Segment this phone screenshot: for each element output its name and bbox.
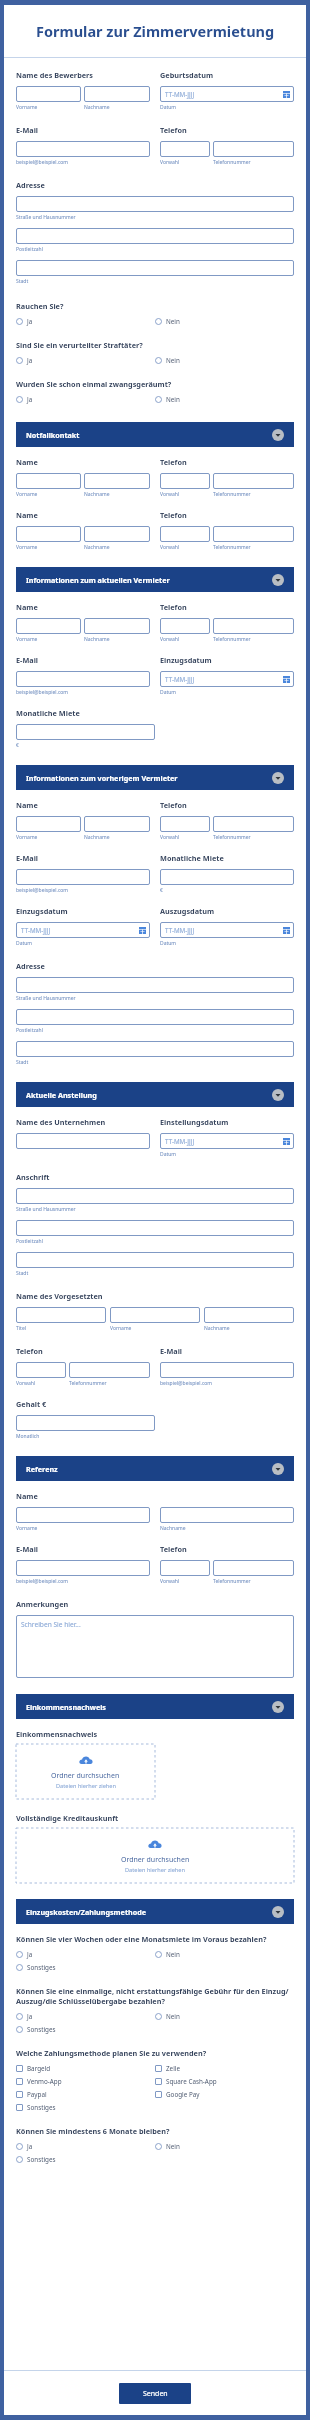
button[interactable]: Venmo-App — [16, 2077, 155, 2086]
button[interactable]: Notfallkontakt — [16, 422, 294, 447]
button[interactable]: Ja — [16, 356, 155, 365]
button[interactable] — [160, 816, 210, 832]
button[interactable] — [16, 1188, 294, 1204]
staticText: Telefonnummer — [213, 544, 251, 551]
button[interactable] — [16, 260, 294, 276]
button[interactable]: Toggle section — [272, 1906, 284, 1918]
button[interactable]: Informationen zum vorherigem Vermieter — [16, 765, 294, 790]
button[interactable] — [160, 473, 210, 489]
button[interactable] — [213, 816, 294, 832]
button[interactable] — [160, 1560, 210, 1576]
staticText: Square Cash-App — [166, 2077, 217, 2086]
staticText: TT-MM-JJJJ — [165, 1137, 195, 1146]
staticText: Name des Unternehmen — [16, 1117, 106, 1127]
button[interactable] — [16, 869, 150, 885]
button[interactable] — [213, 473, 294, 489]
button[interactable] — [16, 1041, 294, 1057]
button[interactable]: Referenz — [16, 1456, 294, 1481]
button[interactable]: Square Cash-App — [155, 2077, 294, 2086]
button[interactable] — [160, 1507, 294, 1523]
button[interactable]: Toggle section — [272, 772, 284, 784]
button[interactable]: Google Pay — [155, 2090, 294, 2099]
button[interactable]: Einzugskosten/Zahlungsmethode — [16, 1899, 294, 1924]
button[interactable]: Nein — [155, 356, 294, 365]
button[interactable]: Paypal — [16, 2090, 155, 2099]
button[interactable] — [110, 1307, 200, 1323]
button[interactable]: Toggle section — [272, 1089, 284, 1101]
button[interactable]: Einkommensnachweis — [16, 1694, 294, 1719]
button[interactable]: Zelle — [155, 2064, 294, 2073]
button[interactable] — [16, 86, 81, 102]
button[interactable]: Upload Einkommensnachweis — [16, 1744, 155, 1799]
button[interactable] — [16, 816, 81, 832]
button[interactable] — [16, 671, 150, 687]
button[interactable] — [204, 1307, 294, 1323]
button[interactable]: Ja — [16, 317, 155, 326]
button[interactable]: Ja — [16, 1950, 155, 1959]
button[interactable]: Toggle section — [272, 1701, 284, 1713]
button[interactable]: Sonstiges — [16, 2103, 56, 2112]
staticText: Telefonnummer — [69, 1380, 107, 1387]
button[interactable] — [16, 1307, 106, 1323]
button[interactable] — [213, 526, 294, 542]
button[interactable]: Toggle section — [272, 429, 284, 441]
button[interactable]: Sonstiges — [16, 2155, 56, 2164]
button[interactable] — [16, 618, 81, 634]
button[interactable] — [16, 526, 81, 542]
button[interactable] — [16, 1220, 294, 1236]
button[interactable]: Nein — [155, 2142, 294, 2151]
button[interactable]: Nein — [155, 395, 294, 404]
button[interactable] — [16, 1362, 66, 1378]
button[interactable] — [16, 977, 294, 993]
button[interactable]: Ja — [16, 395, 155, 404]
button[interactable]: Upload Vollständige Kreditauskunft — [16, 1828, 294, 1883]
button[interactable]: Schreiben Sie hier... — [16, 1615, 294, 1678]
staticText: Vorwahl — [160, 491, 180, 498]
button[interactable]: Nein — [155, 2012, 294, 2021]
button[interactable]: Toggle section — [272, 574, 284, 586]
button[interactable] — [84, 473, 150, 489]
button[interactable] — [160, 526, 210, 542]
button[interactable]: Nein — [155, 1950, 294, 1959]
button[interactable] — [16, 1252, 294, 1268]
other: Pick date — [283, 927, 290, 934]
button[interactable] — [160, 618, 210, 634]
button[interactable] — [16, 473, 81, 489]
button[interactable]: Toggle section — [272, 1463, 284, 1475]
button[interactable] — [16, 141, 150, 157]
button[interactable] — [84, 618, 150, 634]
button[interactable]: Sonstiges — [16, 2025, 56, 2034]
button[interactable] — [213, 1560, 294, 1576]
button[interactable] — [160, 141, 210, 157]
button[interactable]: Ja — [16, 2012, 155, 2021]
button[interactable]: Senden — [119, 2383, 191, 2404]
button[interactable] — [16, 724, 155, 740]
button[interactable] — [16, 1009, 294, 1025]
button[interactable]: Bargeld — [16, 2064, 155, 2073]
button[interactable] — [213, 618, 294, 634]
button[interactable]: TT-MM-JJJJ — [160, 86, 294, 102]
button[interactable] — [16, 1415, 155, 1431]
button[interactable]: Informationen zum aktuellen Vermieter — [16, 567, 294, 592]
button[interactable]: TT-MM-JJJJ — [160, 922, 294, 938]
button[interactable] — [16, 1507, 150, 1523]
button[interactable]: TT-MM-JJJJ — [160, 1133, 294, 1149]
button[interactable]: Nein — [155, 317, 294, 326]
button[interactable] — [16, 1560, 150, 1576]
button[interactable] — [84, 526, 150, 542]
button[interactable] — [16, 1133, 150, 1149]
button[interactable]: Ja — [16, 2142, 155, 2151]
button[interactable] — [16, 228, 294, 244]
button[interactable] — [16, 196, 294, 212]
button[interactable] — [84, 816, 150, 832]
button[interactable]: Sonstiges — [16, 1963, 56, 1972]
button[interactable]: Aktuelle Anstellung — [16, 1082, 294, 1107]
button[interactable] — [69, 1362, 150, 1378]
staticText: Einzugskosten/Zahlungsmethode — [26, 1907, 147, 1917]
button[interactable] — [213, 141, 294, 157]
button[interactable] — [84, 86, 150, 102]
button[interactable]: TT-MM-JJJJ — [160, 671, 294, 687]
button[interactable] — [160, 869, 294, 885]
button[interactable]: TT-MM-JJJJ — [16, 922, 150, 938]
button[interactable] — [160, 1362, 294, 1378]
